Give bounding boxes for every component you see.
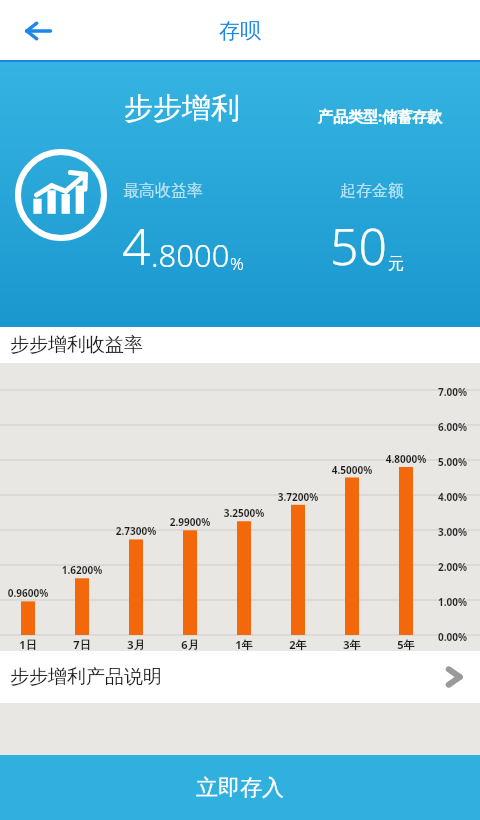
staticText: 立即存入	[196, 774, 284, 802]
staticText: 3.00%	[438, 525, 467, 539]
staticText: 2年	[278, 637, 318, 652]
staticText: 5.00%	[438, 455, 467, 469]
button[interactable]: 立即存入	[0, 755, 480, 820]
staticText: 存呗	[219, 18, 261, 44]
staticText: 3年	[332, 637, 372, 652]
staticText: .8000	[151, 234, 230, 276]
staticText: 步步增利产品说明	[10, 665, 162, 689]
button[interactable]: 步步增利产品说明	[0, 651, 480, 703]
staticText: 0.9600%	[2, 586, 54, 600]
staticText: 步步增利收益率	[10, 333, 143, 357]
staticText: 3.2500%	[218, 506, 270, 520]
staticText: %	[230, 252, 244, 275]
staticText: 3月	[116, 637, 156, 652]
staticText: 3.7200%	[272, 490, 324, 504]
staticText: 2.00%	[438, 560, 467, 574]
staticText: 起存金额	[340, 181, 404, 201]
staticText: 5年	[386, 637, 426, 652]
staticText: 1.00%	[438, 595, 467, 609]
staticText: 0.00%	[438, 630, 467, 644]
staticText: 4.5000%	[326, 463, 378, 477]
staticText: 4.00%	[438, 490, 467, 504]
staticText: 4.8000%	[380, 452, 432, 466]
staticText: 2.7300%	[110, 524, 162, 538]
staticText: 50	[330, 212, 388, 280]
staticText: 产品类型:储蓄存款	[318, 106, 443, 126]
staticText: 7.00%	[438, 385, 467, 399]
staticText: 1年	[224, 637, 264, 652]
staticText: 1.6200%	[56, 563, 108, 577]
staticText: 元	[388, 254, 404, 274]
staticText: 1日	[8, 637, 48, 652]
staticText: 最高收益率	[123, 181, 203, 201]
staticText: 6月	[170, 637, 210, 652]
staticText: 6.00%	[438, 420, 467, 434]
button[interactable]: Back	[0, 0, 76, 62]
staticText: 步步增利	[124, 90, 240, 127]
staticText: 4	[122, 212, 151, 280]
staticText: 7日	[62, 637, 102, 652]
staticText: 2.9900%	[164, 515, 216, 529]
